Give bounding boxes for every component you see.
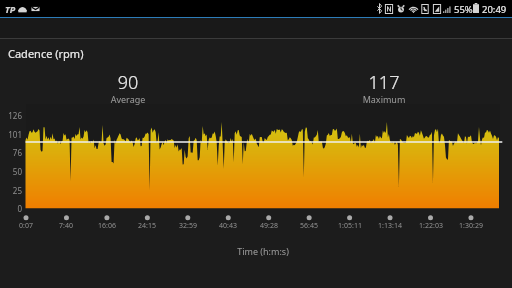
staticText: 1:13:14 — [368, 221, 412, 231]
staticText: 16:06 — [85, 221, 129, 231]
staticText: Cadence (rpm) — [8, 46, 84, 61]
staticText: 32:59 — [166, 221, 210, 231]
staticText: 24:15 — [125, 221, 169, 231]
staticText: 40:43 — [206, 221, 250, 231]
staticText: 50 — [0, 166, 22, 177]
staticText: Maximum — [324, 93, 444, 105]
staticText: 49:28 — [247, 221, 291, 231]
staticText: 101 — [0, 129, 22, 140]
staticText: 1:05:11 — [328, 221, 372, 231]
staticText: 20:49 — [482, 3, 507, 16]
staticText: 56:45 — [287, 221, 331, 231]
staticText: 126 — [0, 110, 22, 121]
staticText: 76 — [0, 147, 22, 158]
staticText: 0:07 — [4, 221, 48, 231]
staticText: 90 — [68, 70, 188, 95]
staticText: 117 — [324, 70, 444, 95]
staticText: TP — [5, 3, 16, 15]
staticText: 55% — [454, 3, 473, 16]
staticText: 1:30:29 — [449, 221, 493, 231]
staticText: Time (h:m:s) — [203, 245, 323, 257]
staticText: 7:40 — [44, 221, 88, 231]
staticText: 25 — [0, 185, 22, 196]
staticText: 0 — [0, 203, 22, 214]
staticText: 1:22:03 — [409, 221, 453, 231]
staticText: Average — [68, 93, 188, 105]
